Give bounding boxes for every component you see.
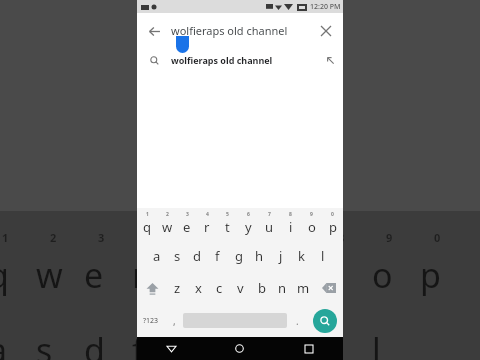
button[interactable]: 7 (259, 208, 280, 240)
staticText: x (195, 279, 202, 297)
staticText: t (225, 218, 230, 236)
staticText: j (279, 247, 283, 265)
staticText: g (180, 327, 201, 360)
staticText: 1 (2, 230, 9, 245)
button[interactable]: wolfieraps old channel (137, 48, 343, 72)
button[interactable]: Shift (137, 272, 167, 304)
button[interactable]: h (249, 240, 270, 272)
button[interactable]: x (188, 272, 209, 304)
staticText: s (36, 327, 53, 360)
button[interactable]: 3 (177, 208, 197, 240)
staticText: f (215, 247, 220, 265)
staticText: wolfieraps old channel (171, 54, 317, 66)
button[interactable]: Period (287, 304, 307, 337)
staticText: q (0, 252, 9, 298)
staticText: ?123 (143, 316, 159, 326)
staticText: 8 (289, 211, 292, 218)
button[interactable]: 1 (137, 208, 157, 240)
staticText: 1 (146, 211, 149, 218)
staticText: v (237, 279, 244, 297)
staticText: u (276, 252, 298, 298)
staticText: m (297, 279, 310, 297)
button[interactable]: k (291, 240, 312, 272)
staticText: k (324, 327, 343, 360)
staticText: d (193, 247, 201, 265)
staticText: k (298, 247, 305, 265)
button[interactable]: Comma (165, 304, 183, 337)
staticText: e (84, 252, 104, 298)
staticText: p (420, 252, 441, 298)
staticText: r (204, 218, 210, 236)
staticText: a (0, 327, 8, 360)
staticText: o (372, 252, 393, 298)
button[interactable]: ?123 (137, 304, 165, 337)
button[interactable]: Home (205, 337, 274, 360)
staticText: 9 (386, 230, 393, 245)
staticText: 0 (331, 211, 334, 218)
button[interactable]: 5 (217, 208, 238, 240)
button[interactable]: Back (137, 337, 205, 360)
button[interactable]: l (312, 240, 333, 272)
button[interactable]: f (207, 240, 228, 272)
staticText: d (84, 327, 105, 360)
staticText: j (276, 327, 285, 360)
button[interactable]: Back (137, 14, 171, 48)
button[interactable]: j (270, 240, 291, 272)
button[interactable]: Search (307, 304, 343, 337)
staticText: q (143, 218, 151, 236)
button[interactable]: 4 (197, 208, 217, 240)
staticText: w (36, 252, 63, 298)
button[interactable]: 2 (157, 208, 177, 240)
staticText: r (132, 252, 147, 298)
staticText: 2 (50, 230, 57, 245)
button[interactable]: 9 (301, 208, 322, 240)
staticText: 12:20 PM (310, 2, 341, 12)
staticText: 7 (268, 211, 271, 218)
staticText: wolfieraps old channel (171, 23, 309, 38)
button[interactable]: v (230, 272, 251, 304)
button[interactable]: 6 (238, 208, 259, 240)
button[interactable]: 0 (322, 208, 343, 240)
button[interactable]: d (187, 240, 207, 272)
button[interactable]: Clear search (309, 14, 343, 48)
staticText: n (278, 279, 287, 297)
staticText: . (296, 314, 299, 328)
staticText: 2 (166, 211, 169, 218)
staticText: 9 (310, 211, 313, 218)
staticText: 6 (247, 211, 250, 218)
button[interactable]: a (147, 240, 167, 272)
staticText: i (324, 252, 333, 298)
button[interactable]: s (167, 240, 187, 272)
staticText: 8 (338, 230, 345, 245)
button[interactable]: 8 (280, 208, 301, 240)
staticText: a (153, 247, 161, 265)
staticText: i (289, 218, 293, 236)
staticText: y (228, 252, 246, 298)
staticText: l (372, 327, 381, 360)
button[interactable]: Recent apps (274, 337, 343, 360)
button[interactable]: c (209, 272, 230, 304)
staticText: o (308, 218, 316, 236)
staticText: 7 (290, 230, 297, 245)
staticText: 6 (242, 230, 249, 245)
button[interactable]: n (272, 272, 293, 304)
button[interactable]: m (293, 272, 314, 304)
staticText: 0 (434, 230, 441, 245)
staticText: 4 (146, 230, 153, 245)
staticText: l (321, 247, 325, 265)
staticText: 3 (186, 211, 189, 218)
staticText: w (162, 218, 173, 236)
staticText: h (255, 247, 264, 265)
staticText: c (216, 279, 223, 297)
button[interactable]: g (228, 240, 249, 272)
button[interactable]: Backspace (314, 272, 343, 304)
button[interactable]: z (167, 272, 188, 304)
staticText: y (245, 218, 252, 236)
staticText: 5 (226, 211, 229, 218)
button[interactable]: b (251, 272, 272, 304)
staticText: b (258, 279, 266, 297)
staticText: 3 (98, 230, 105, 245)
